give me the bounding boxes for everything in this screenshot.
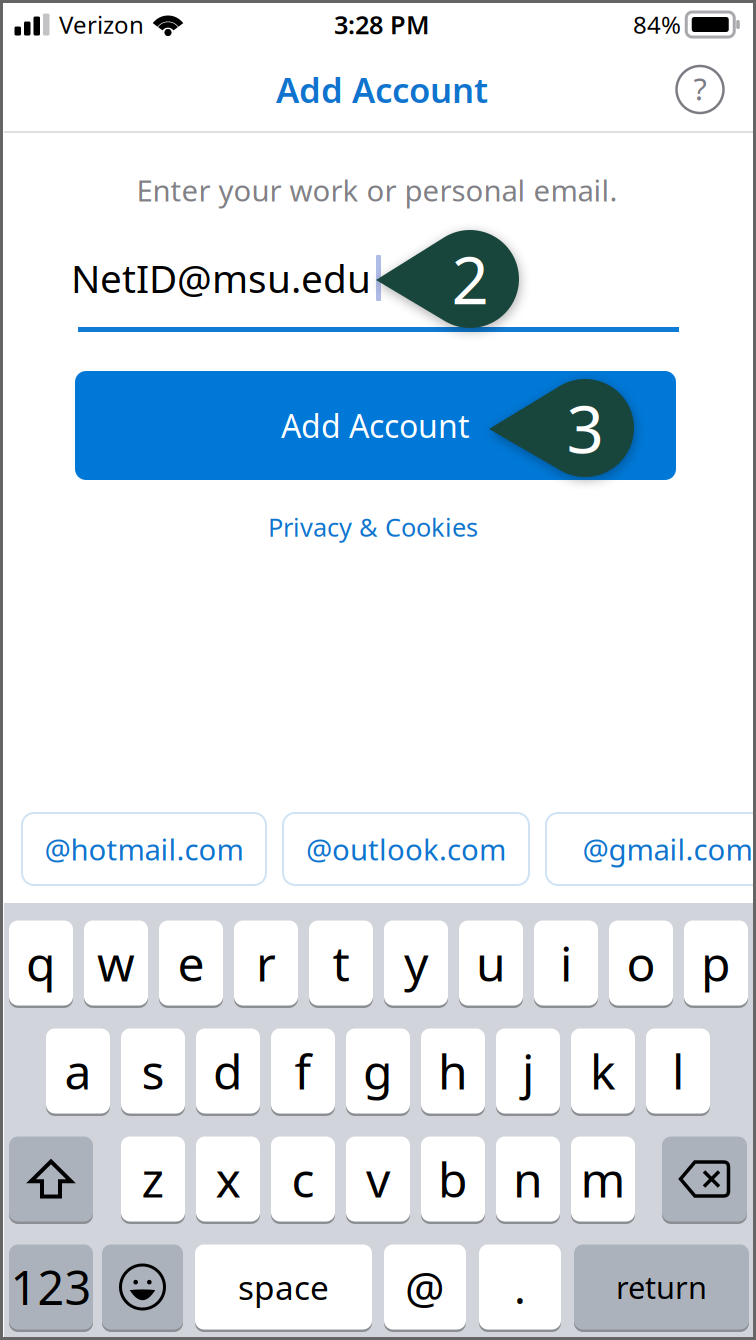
staticText: m <box>580 1147 625 1211</box>
staticText: s <box>141 1039 164 1103</box>
staticText: 2 <box>451 236 488 322</box>
staticText: c <box>291 1147 314 1211</box>
button[interactable]: Shift <box>9 1135 93 1223</box>
button[interactable]: @hotmail.com <box>22 813 266 885</box>
button[interactable]: l <box>646 1027 710 1115</box>
staticText: space <box>238 1265 329 1309</box>
staticText: Add Account <box>276 66 488 112</box>
button[interactable]: c <box>271 1135 335 1223</box>
staticText: @hotmail.com <box>44 829 243 868</box>
button[interactable]: Delete <box>662 1135 747 1223</box>
button[interactable]: Help <box>670 59 730 119</box>
button[interactable]: r <box>234 919 298 1007</box>
button[interactable]: h <box>421 1027 485 1115</box>
button[interactable]: k <box>571 1027 635 1115</box>
button[interactable]: b <box>421 1135 485 1223</box>
button[interactable]: i <box>534 919 598 1007</box>
button[interactable]: v <box>346 1135 410 1223</box>
staticText: d <box>213 1039 243 1103</box>
button[interactable]: Emoji <box>102 1243 183 1331</box>
button[interactable]: @outlook.com <box>283 813 529 885</box>
staticText: w <box>97 931 135 995</box>
staticText: q <box>26 931 56 995</box>
button[interactable]: y <box>384 919 448 1007</box>
staticText: b <box>438 1147 468 1211</box>
staticText: i <box>560 931 572 995</box>
staticText: p <box>701 931 731 995</box>
staticText: y <box>404 931 428 995</box>
button[interactable]: p <box>684 919 748 1007</box>
staticText: 3 <box>566 385 603 471</box>
button[interactable]: Privacy & Cookies <box>243 505 503 549</box>
staticText: r <box>256 931 276 995</box>
button[interactable]: m <box>571 1135 635 1223</box>
button[interactable]: f <box>271 1027 335 1115</box>
button[interactable]: . <box>479 1243 561 1331</box>
button[interactable]: space <box>195 1243 372 1331</box>
staticText: f <box>294 1039 311 1103</box>
staticText: @ <box>405 1258 445 1316</box>
staticText: k <box>590 1039 616 1103</box>
staticText: 84% <box>633 9 681 40</box>
staticText: a <box>64 1039 91 1103</box>
staticText: Privacy & Cookies <box>268 510 478 544</box>
staticText: j <box>522 1039 534 1103</box>
button[interactable]: @ <box>384 1243 466 1331</box>
staticText: 123 <box>10 1256 91 1318</box>
staticText: 3:28 PM <box>334 8 430 41</box>
button[interactable]: Return <box>574 1243 749 1331</box>
staticText: @outlook.com <box>306 829 506 868</box>
staticText: @gmail.com <box>582 829 752 868</box>
staticText: z <box>141 1147 164 1211</box>
button[interactable]: d <box>196 1027 260 1115</box>
button[interactable]: e <box>159 919 223 1007</box>
button[interactable]: z <box>121 1135 185 1223</box>
button[interactable]: j <box>496 1027 560 1115</box>
staticText: n <box>513 1147 543 1211</box>
button[interactable]: @gmail.com <box>546 813 756 885</box>
staticText: l <box>672 1039 684 1103</box>
button[interactable]: o <box>609 919 673 1007</box>
button[interactable]: t <box>309 919 373 1007</box>
staticText: o <box>626 931 655 995</box>
staticText: return <box>616 1267 707 1307</box>
button[interactable]: q <box>9 919 73 1007</box>
staticText: ? <box>693 68 706 109</box>
staticText: g <box>363 1039 393 1103</box>
button[interactable]: Add Account <box>75 371 676 480</box>
staticText: x <box>215 1147 240 1211</box>
staticText: Verizon <box>59 9 144 40</box>
staticText: Enter your work or personal email. <box>136 170 617 209</box>
button[interactable]: s <box>121 1027 185 1115</box>
button[interactable]: g <box>346 1027 410 1115</box>
staticText: e <box>177 931 204 995</box>
staticText: NetID@msu.edu <box>71 252 371 304</box>
button[interactable]: a <box>46 1027 110 1115</box>
button[interactable]: w <box>84 919 148 1007</box>
button[interactable]: Numbers <box>9 1243 93 1331</box>
staticText: Add Account <box>281 404 470 447</box>
button[interactable]: u <box>459 919 523 1007</box>
staticText: t <box>332 931 349 995</box>
staticText: h <box>438 1039 468 1103</box>
staticText: v <box>366 1147 390 1211</box>
staticText: u <box>476 931 506 995</box>
staticText: . <box>514 1258 526 1316</box>
button[interactable]: n <box>496 1135 560 1223</box>
button[interactable]: x <box>196 1135 260 1223</box>
